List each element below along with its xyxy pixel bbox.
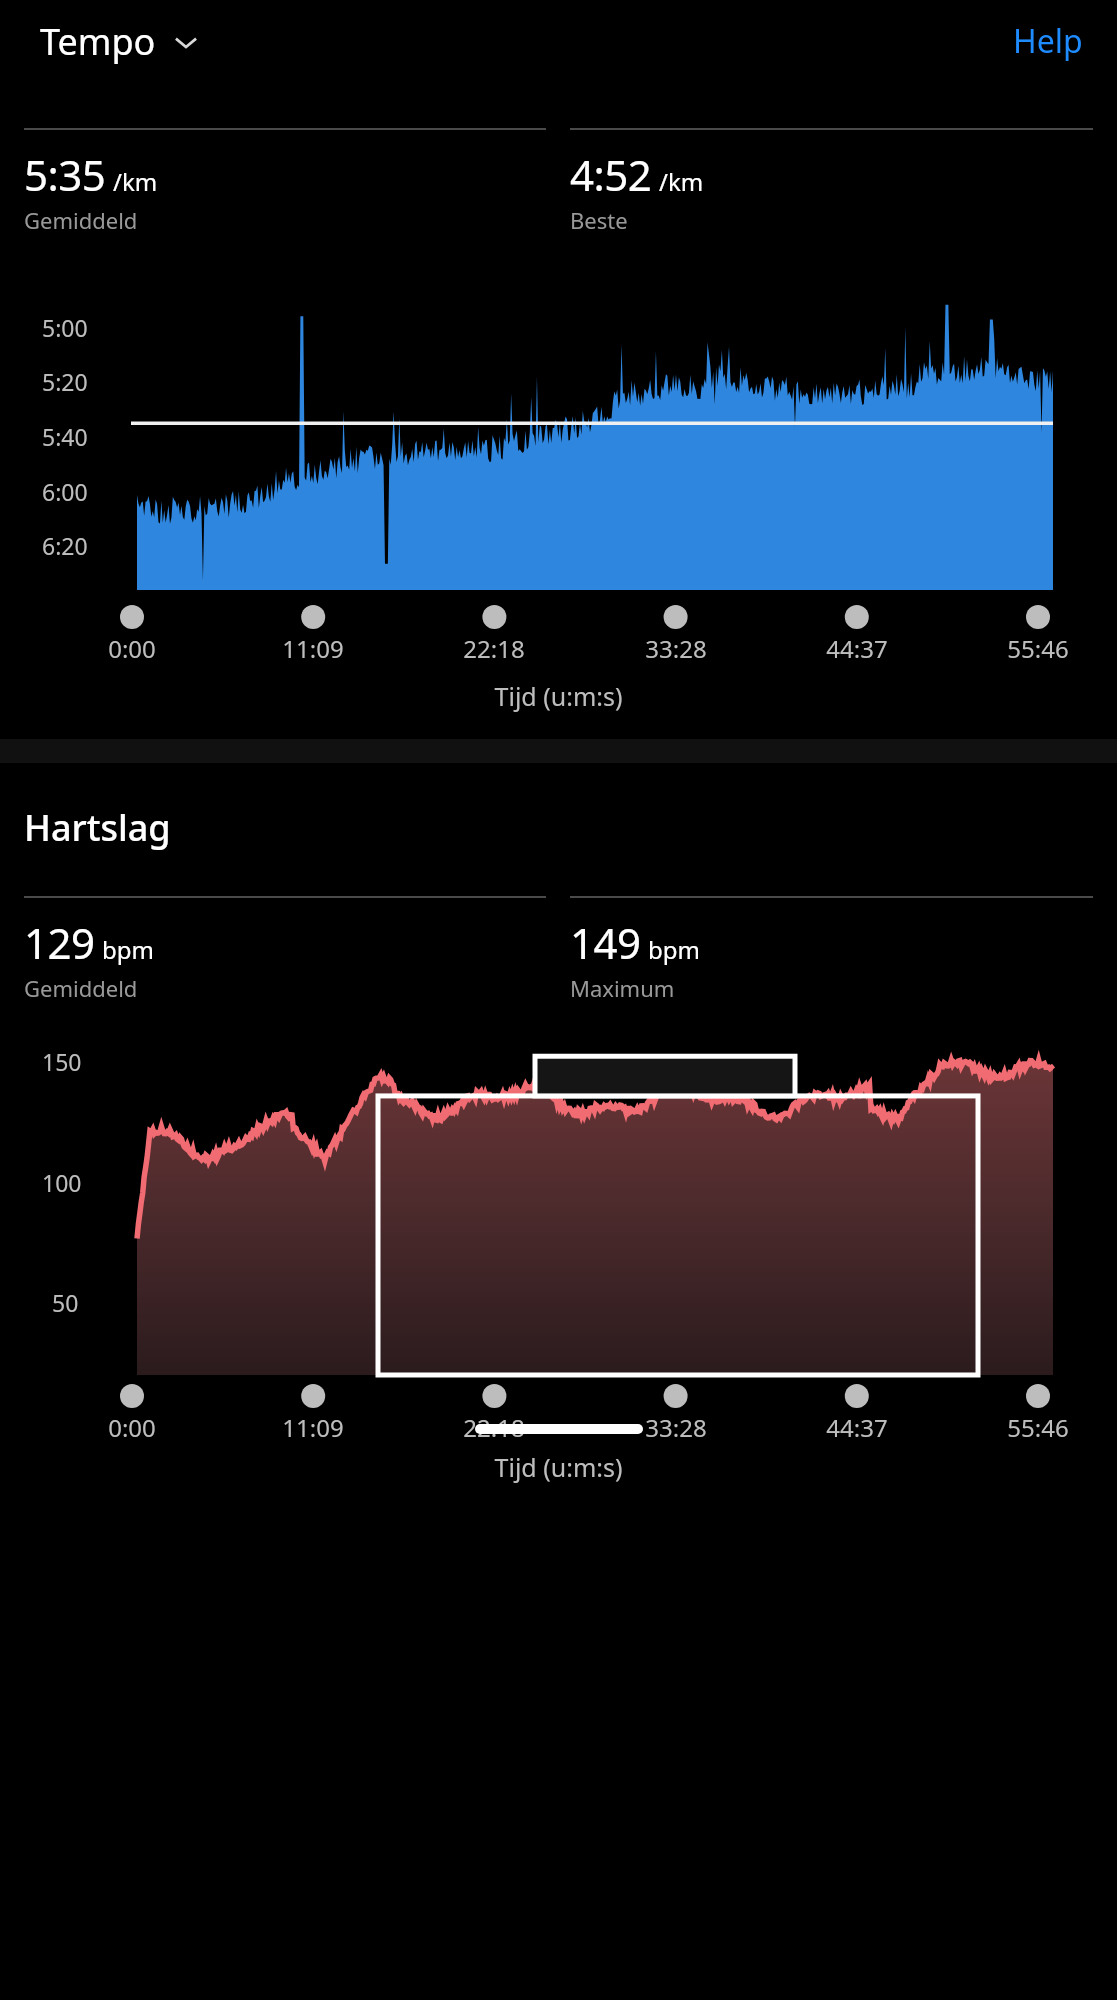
staticText: 44:37 (797, 1411, 917, 1444)
staticText: 44:37 (797, 632, 917, 665)
staticText: 22:18 (434, 632, 554, 665)
staticText: /km (659, 165, 704, 198)
staticText: bpm (648, 933, 700, 966)
staticText: Gemiddeld (24, 973, 138, 1003)
staticText: 100 (42, 1167, 82, 1198)
staticText: 5:00 (42, 312, 88, 343)
staticText: 33:28 (616, 632, 736, 665)
staticText: 5:20 (42, 366, 88, 397)
staticText: bpm (102, 933, 154, 966)
staticText: 55:46 (978, 1411, 1098, 1444)
staticText: 55:46 (978, 632, 1098, 665)
staticText: 5:35 (24, 146, 106, 203)
staticText: 6:00 (42, 476, 88, 507)
button[interactable]: 149 (570, 896, 1093, 1003)
other: Home indicator (475, 1424, 643, 1434)
button[interactable]: Pace chart (0, 295, 1117, 590)
staticText: 5:40 (42, 421, 88, 452)
staticText: 4:52 (570, 146, 652, 203)
staticText: 11:09 (253, 1411, 373, 1444)
button[interactable]: Tempo (40, 17, 200, 66)
button[interactable]: Heart rate chart (0, 1043, 1117, 1375)
staticText: 0:00 (72, 632, 192, 665)
staticText: 149 (570, 914, 641, 971)
staticText: 150 (42, 1046, 82, 1077)
staticText: 33:28 (616, 1411, 736, 1444)
button[interactable]: 5:35 (24, 128, 546, 235)
staticText: Gemiddeld (24, 205, 138, 235)
staticText: Help (1013, 19, 1083, 63)
staticText: 50 (52, 1287, 79, 1318)
staticText: 6:20 (42, 530, 88, 561)
staticText: 0:00 (72, 1411, 192, 1444)
staticText: /km (113, 165, 158, 198)
staticText: Tijd (u:m:s) (0, 679, 1117, 713)
staticText: Tempo (40, 17, 156, 66)
staticText: 11:09 (253, 632, 373, 665)
staticText: Tijd (u:m:s) (0, 1450, 1117, 1484)
button[interactable]: 129 (24, 896, 546, 1003)
staticText: 129 (24, 914, 95, 971)
button[interactable]: Help (1013, 19, 1083, 63)
button[interactable]: 4:52 (570, 128, 1093, 235)
staticText: Maximum (570, 973, 675, 1003)
staticText: Beste (570, 205, 628, 235)
staticText: Hartslag (24, 803, 171, 852)
staticText: 22:18 (434, 1411, 554, 1444)
